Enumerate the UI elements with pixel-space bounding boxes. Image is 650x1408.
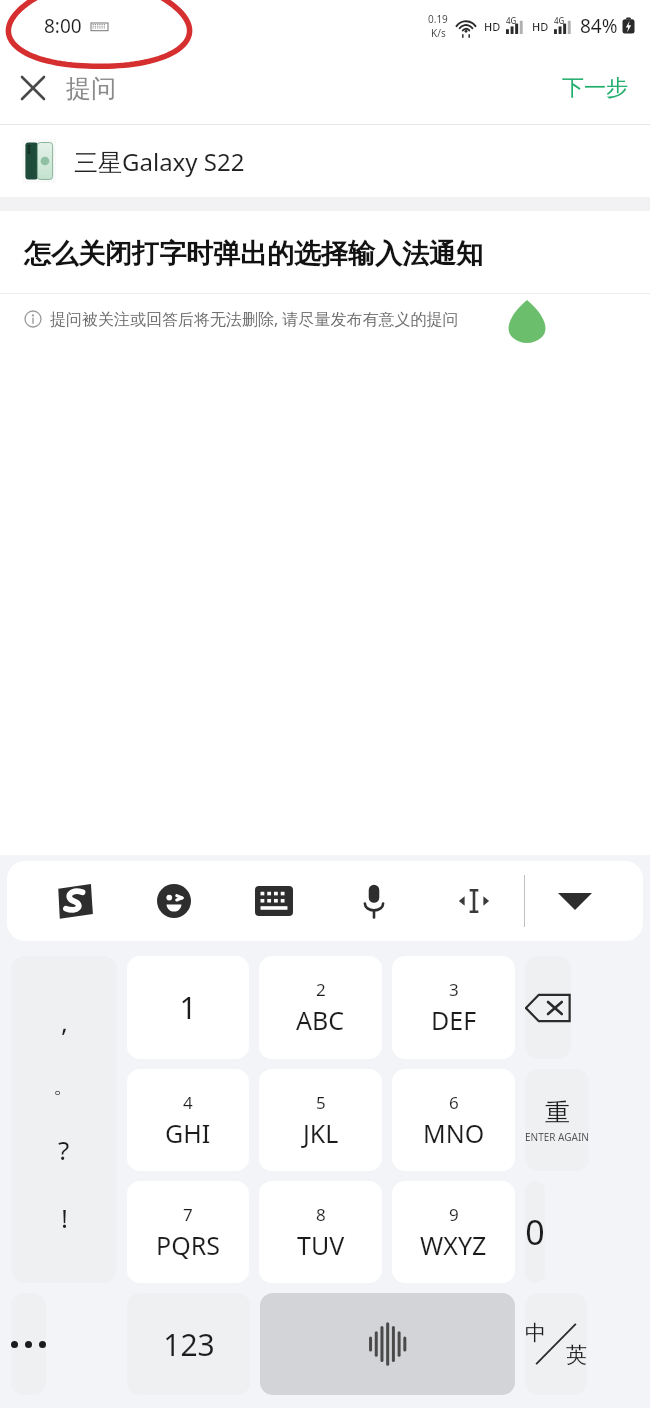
staticText: , (61, 1004, 68, 1039)
staticText: ABC (296, 1003, 345, 1037)
staticText: 0.19 (428, 12, 448, 26)
staticText: 4G (506, 15, 517, 26)
button[interactable]: Move cursor (424, 861, 524, 941)
button[interactable]: 1 (127, 956, 249, 1059)
button[interactable]: 4 (127, 1069, 249, 1171)
staticText: 2 (316, 978, 326, 1001)
button[interactable]: Hide keyboard (525, 861, 625, 941)
staticText: ! (61, 1200, 68, 1235)
button[interactable]: Voice input (260, 1293, 515, 1395)
button[interactable]: Close (0, 52, 66, 124)
staticText: 提问被关注或回答后将无法删除, 请尽量发布有意义的提问 (50, 308, 459, 330)
staticText: 0 (525, 1209, 545, 1255)
button[interactable]: 2 (259, 956, 382, 1059)
staticText: 重 (545, 1097, 570, 1128)
staticText: ? (58, 1132, 70, 1167)
staticText: 9 (449, 1203, 459, 1226)
staticText: ENTER AGAIN (525, 1130, 589, 1144)
button[interactable]: Switch Chinese English (525, 1293, 587, 1395)
button[interactable]: 8 (259, 1181, 382, 1283)
button[interactable]: 怎么关闭打字时弹出的选择输入法通知 (0, 211, 650, 293)
button[interactable]: Keyboard layout (224, 861, 324, 941)
staticText: 123 (163, 1324, 215, 1365)
staticText: 4 (183, 1091, 193, 1114)
button[interactable]: 123 (127, 1293, 250, 1395)
staticText: TUV (297, 1228, 345, 1262)
button[interactable]: 下一步 (540, 60, 650, 116)
staticText: GHI (165, 1116, 211, 1150)
staticText: 中 (525, 1320, 546, 1346)
button[interactable]: More options (11, 1293, 46, 1395)
staticText: 7 (183, 1203, 193, 1226)
staticText: 6 (449, 1091, 459, 1114)
staticText: 84% (580, 13, 618, 39)
staticText: MNO (423, 1116, 485, 1150)
staticText: 4G (554, 15, 565, 26)
staticText: PQRS (156, 1228, 220, 1262)
button[interactable]: , (11, 956, 117, 1283)
staticText: HD (532, 19, 549, 34)
button[interactable]: 3 (392, 956, 515, 1059)
staticText: 。 (53, 1072, 75, 1100)
button[interactable]: 5 (259, 1069, 382, 1171)
staticText: K/s (431, 26, 446, 40)
button[interactable]: 重 (525, 1069, 589, 1171)
button[interactable]: 三星Galaxy S22 (0, 125, 650, 197)
staticText: 三星Galaxy S22 (74, 145, 245, 178)
staticText: 提问 (66, 73, 116, 104)
staticText: 1 (179, 987, 197, 1028)
staticText: 8:00 (44, 13, 82, 39)
button[interactable]: Voice input (324, 861, 424, 941)
staticText: JKL (303, 1116, 339, 1150)
button[interactable]: 7 (127, 1181, 249, 1283)
staticText: WXYZ (420, 1228, 487, 1262)
staticText: DEF (431, 1003, 477, 1037)
staticText: 8 (316, 1203, 326, 1226)
staticText: 怎么关闭打字时弹出的选择输入法通知 (24, 237, 483, 271)
button[interactable]: Emoji (124, 861, 224, 941)
staticText: 英 (566, 1342, 587, 1368)
staticText: HD (484, 19, 501, 34)
button[interactable]: 9 (392, 1181, 515, 1283)
button[interactable]: Backspace (525, 956, 571, 1059)
button[interactable]: Sogou input method (25, 861, 124, 941)
button[interactable]: 6 (392, 1069, 515, 1171)
button[interactable]: 0 (525, 1181, 545, 1283)
staticText: 下一步 (562, 74, 628, 102)
staticText: 3 (449, 978, 459, 1001)
staticText: 5 (316, 1091, 326, 1114)
